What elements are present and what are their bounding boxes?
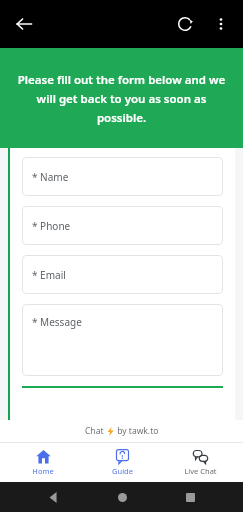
button[interactable]: Refresh — [167, 6, 203, 42]
button[interactable]: Back — [38, 482, 68, 512]
button[interactable]: Back — [8, 8, 40, 40]
staticText: Please fill out the form below and we wi… — [14, 72, 229, 125]
button[interactable]: Recent apps — [175, 482, 205, 512]
staticText: * Name — [32, 170, 69, 184]
button[interactable]: Home — [107, 482, 137, 512]
button[interactable]: * Phone — [22, 206, 223, 245]
staticText: Home — [32, 466, 54, 476]
button[interactable]: Home — [8, 442, 78, 482]
button[interactable]: * Email — [22, 255, 223, 294]
staticText: by tawk.to — [115, 425, 159, 437]
staticText: * Message — [32, 315, 82, 329]
button[interactable]: Live Chat — [165, 442, 235, 482]
button[interactable]: Guide — [87, 442, 157, 482]
staticText: Live Chat — [184, 466, 217, 476]
staticText: Chat — [85, 425, 106, 437]
staticText: * Phone — [32, 219, 71, 233]
button[interactable]: * Name — [22, 157, 223, 196]
button[interactable]: * Message — [22, 304, 223, 376]
staticText: Guide — [112, 466, 133, 476]
button[interactable]: More options — [203, 6, 239, 42]
staticText: * Email — [32, 268, 66, 282]
